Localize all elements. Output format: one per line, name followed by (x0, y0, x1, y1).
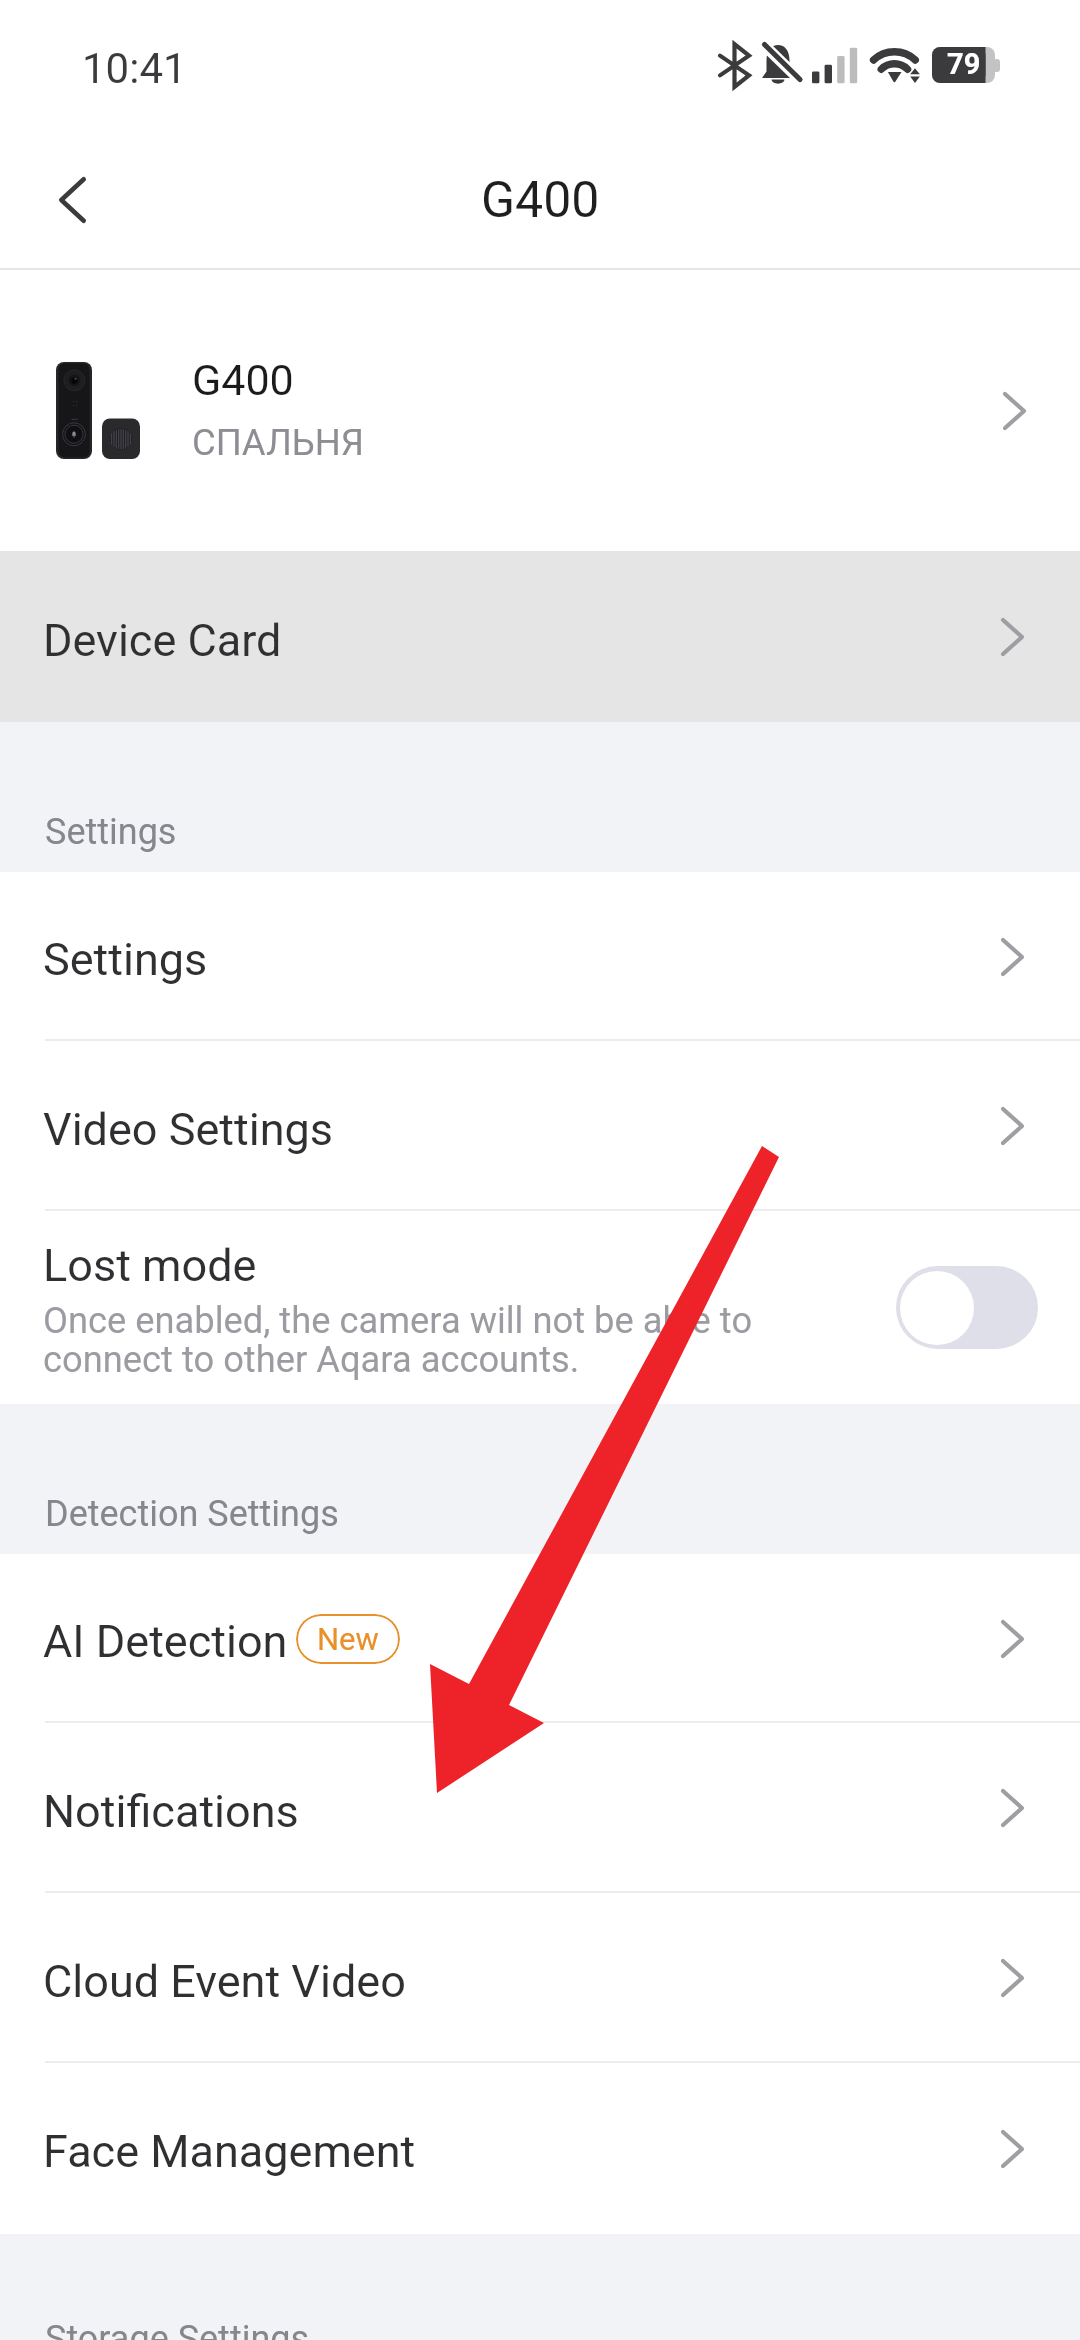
staticText: AI Detection (43, 1615, 288, 1668)
staticText: Detection Settings (45, 1493, 339, 1535)
staticText: СПАЛЬНЯ (192, 421, 364, 464)
staticText: Cloud Event Video (43, 1955, 406, 2008)
staticText: Notifications (43, 1785, 299, 1838)
button[interactable]: Face Management (0, 2063, 1080, 2234)
button[interactable]: Notifications (0, 1723, 1080, 1893)
staticText: Video Settings (43, 1103, 333, 1156)
staticText: G400 (481, 171, 600, 230)
staticText: Device Card (43, 614, 282, 667)
staticText: Once enabled, the camera will not be abl… (43, 1299, 753, 1381)
button[interactable]: Settings (0, 872, 1080, 1041)
staticText: 79 (947, 47, 981, 81)
staticText: Lost mode (43, 1239, 257, 1292)
staticText: New (317, 1621, 379, 1657)
button[interactable]: Back (22, 152, 118, 248)
button[interactable]: Video Settings (0, 1041, 1080, 1211)
button[interactable]: G400 (0, 270, 1080, 551)
button[interactable]: AI Detection (0, 1554, 1080, 1723)
button[interactable]: Lost mode toggle (896, 1266, 1038, 1349)
staticText: G400 (192, 355, 294, 405)
staticText: Face Management (43, 2125, 416, 2178)
button[interactable]: Lost mode (0, 1211, 1080, 1404)
staticText: Settings (43, 933, 208, 986)
staticText: Storage Settings (45, 2318, 310, 2340)
staticText: Settings (45, 811, 177, 853)
staticText: 10:41 (82, 44, 187, 93)
button[interactable]: Cloud Event Video (0, 1893, 1080, 2063)
button[interactable]: Device Card (0, 551, 1080, 722)
